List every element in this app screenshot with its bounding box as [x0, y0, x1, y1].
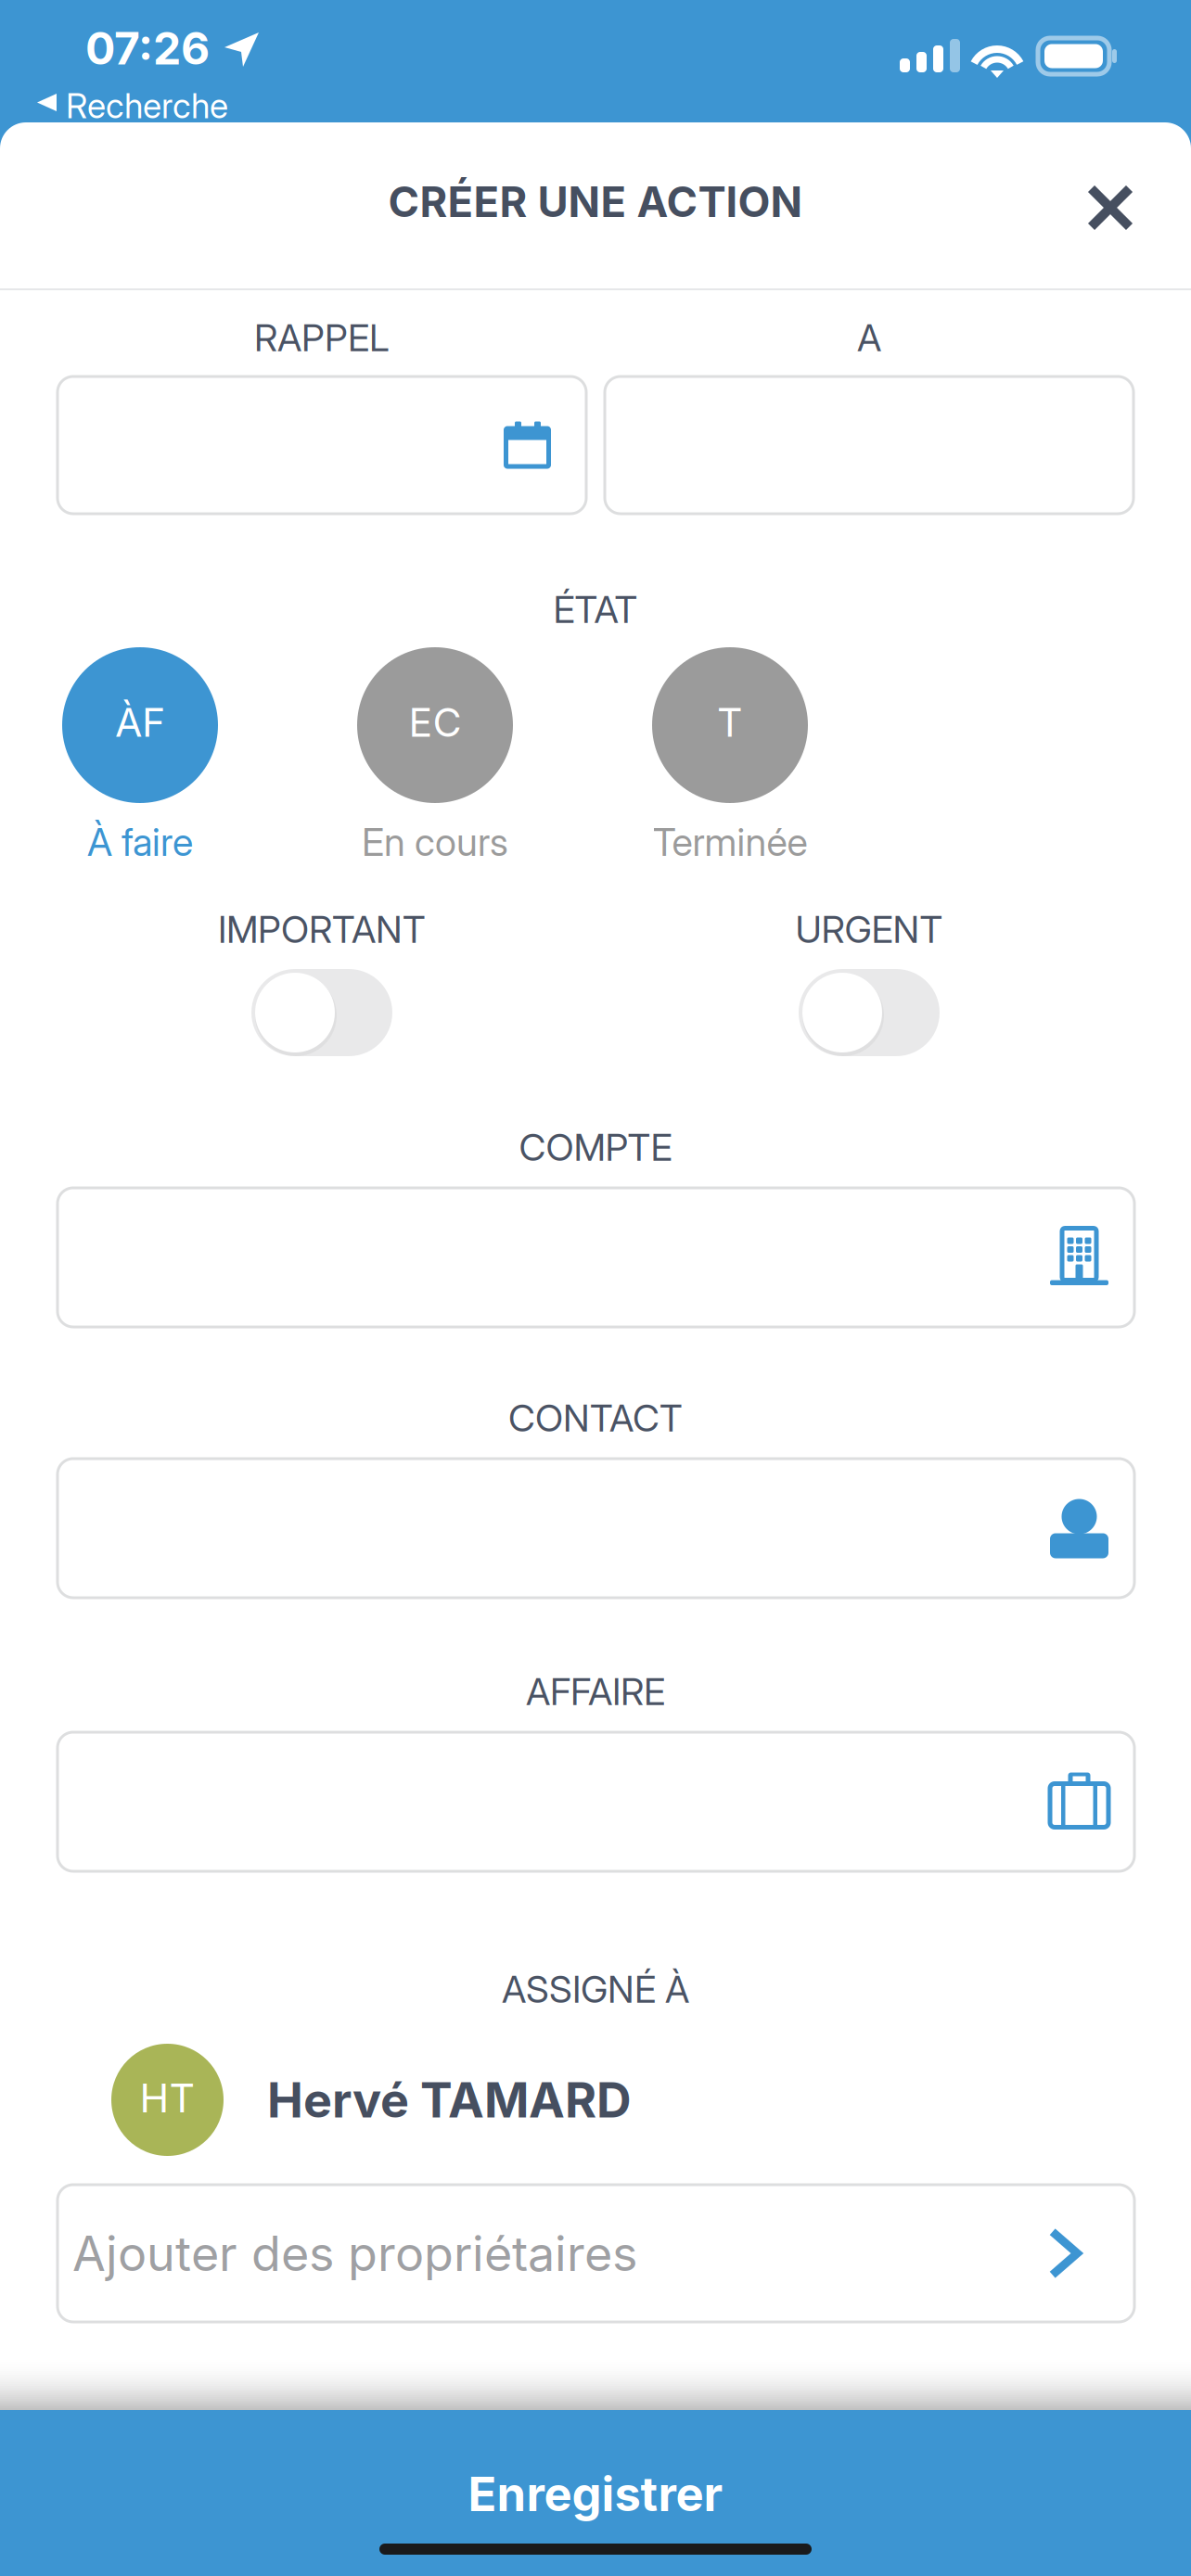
staticText: Hervé TAMARD — [267, 2071, 632, 2129]
button[interactable]: ÀF — [62, 647, 218, 865]
button[interactable]: A — [605, 376, 1133, 514]
staticText: RAPPEL — [254, 315, 390, 360]
staticText: EC — [409, 698, 461, 746]
button[interactable]: Important — [251, 969, 392, 1056]
staticText: AFFAIRE — [526, 1669, 665, 1714]
staticText: T — [717, 698, 743, 746]
button[interactable]: Enregistrer — [0, 2410, 1191, 2576]
button[interactable]: Rappel — [58, 376, 586, 514]
staticText: Terminée — [653, 819, 807, 865]
staticText: Recherche — [66, 85, 228, 126]
staticText: COMPTE — [519, 1125, 672, 1170]
staticText: ÀF — [115, 698, 165, 746]
button[interactable]: EC — [357, 647, 513, 865]
staticText: A — [857, 315, 881, 360]
staticText: ASSIGNÉ À — [502, 1967, 689, 2012]
button[interactable]: Ajouter des propriétaires — [58, 2185, 1134, 2322]
button[interactable]: T — [652, 647, 808, 865]
staticText: CRÉER UNE ACTION — [388, 176, 803, 227]
button[interactable]: Compte — [58, 1188, 1134, 1327]
staticText: Enregistrer — [468, 2466, 723, 2522]
staticText: ÉTAT — [553, 587, 638, 632]
staticText: Ajouter des propriétaires — [72, 2224, 637, 2282]
button[interactable]: Contact — [58, 1459, 1134, 1598]
staticText: IMPORTANT — [218, 907, 426, 952]
button[interactable]: Urgent — [799, 969, 940, 1056]
staticText: CONTACT — [508, 1396, 683, 1440]
staticText: HT — [140, 2074, 195, 2122]
button[interactable]: Fermer — [1050, 147, 1171, 268]
staticText: 07:26 — [85, 21, 210, 75]
staticText: En cours — [362, 819, 508, 865]
button[interactable]: Affaire — [58, 1732, 1134, 1871]
staticText: URGENT — [795, 907, 943, 952]
staticText: À faire — [87, 819, 193, 865]
